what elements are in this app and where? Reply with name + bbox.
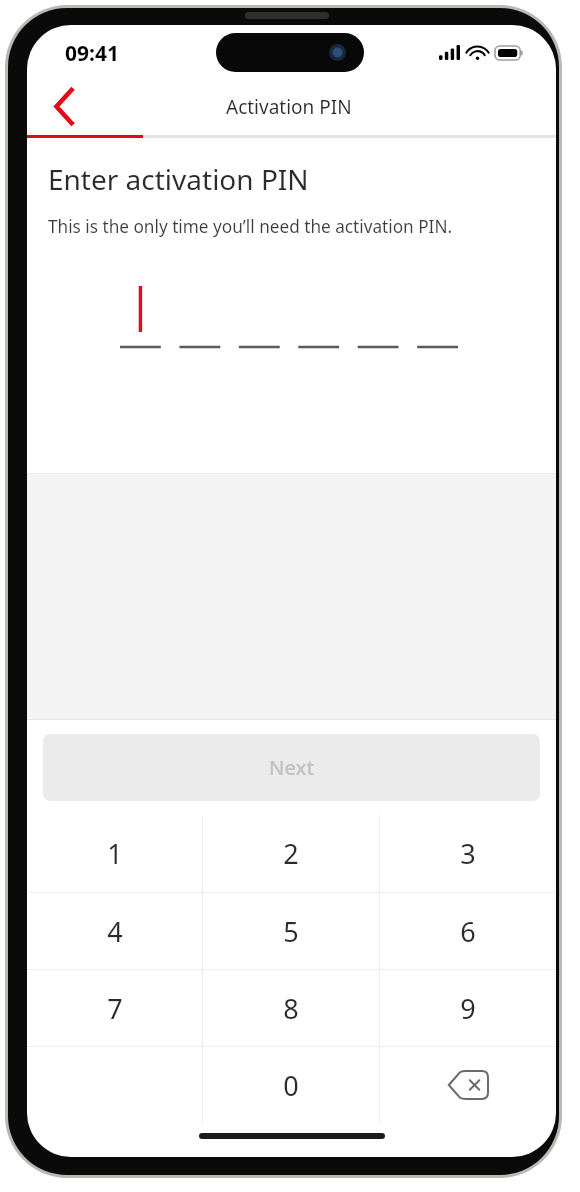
staticText: 9 xyxy=(460,990,476,1027)
staticText: 0 xyxy=(283,1067,299,1104)
staticText: 8 xyxy=(283,990,299,1027)
staticText: 6 xyxy=(460,913,476,950)
staticText: 5 xyxy=(283,913,299,950)
staticText: Next xyxy=(269,754,315,781)
button[interactable]: 4 xyxy=(27,893,202,969)
staticText: 3 xyxy=(460,835,476,872)
staticText: 7 xyxy=(107,990,123,1027)
button[interactable]: 5 xyxy=(203,893,379,969)
button[interactable]: 2 xyxy=(203,815,379,892)
staticText: 2 xyxy=(283,835,299,872)
button[interactable]: 0 xyxy=(203,1047,379,1123)
button[interactable]: 8 xyxy=(203,970,379,1046)
button[interactable]: Backspace xyxy=(380,1047,556,1123)
button[interactable]: 1 xyxy=(27,815,202,892)
staticText: Activation PIN xyxy=(226,94,352,120)
staticText: 1 xyxy=(107,835,123,872)
button[interactable]: Next xyxy=(43,734,540,801)
staticText: Enter activation PIN xyxy=(48,160,309,198)
button[interactable]: 7 xyxy=(27,970,202,1046)
staticText: This is the only time you’ll need the ac… xyxy=(48,215,453,238)
button[interactable]: Back xyxy=(27,78,101,135)
button[interactable]: 3 xyxy=(380,815,556,892)
button[interactable]: 6 xyxy=(380,893,556,969)
button[interactable]: 9 xyxy=(380,970,556,1046)
staticText: 09:41 xyxy=(65,39,119,68)
staticText: 4 xyxy=(107,913,123,950)
